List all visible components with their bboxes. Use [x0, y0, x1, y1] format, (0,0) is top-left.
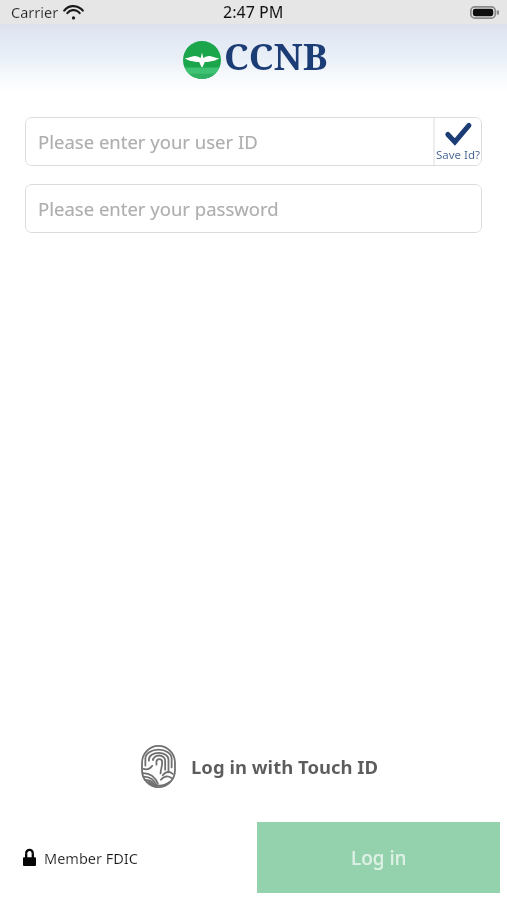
button[interactable]: Save Id: [434, 117, 482, 166]
staticText: Log in: [351, 845, 407, 871]
button[interactable]: Log in: [257, 822, 500, 893]
staticText: Log in with Touch ID: [191, 754, 379, 779]
button[interactable]: Log in with Touch ID: [140, 744, 379, 789]
staticText: 2:47 PM: [223, 1, 284, 23]
staticText: Carrier: [11, 2, 59, 22]
staticText: Save Id?: [436, 147, 481, 161]
staticText: CCNB: [224, 30, 328, 80]
button[interactable]: Member FDIC: [23, 847, 138, 867]
staticText: Please enter your user ID: [38, 129, 258, 154]
staticText: Please enter your password: [38, 196, 279, 221]
button[interactable]: Please enter your user ID: [25, 117, 434, 166]
staticText: Member FDIC: [44, 848, 138, 868]
button[interactable]: Please enter your password: [25, 184, 482, 233]
